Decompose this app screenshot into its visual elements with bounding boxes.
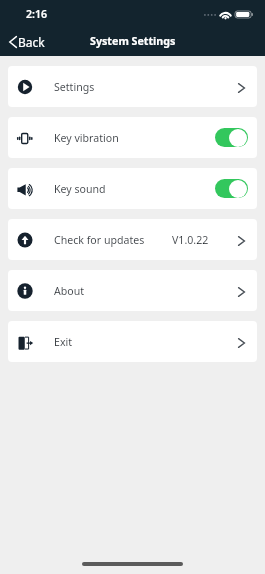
other: Open Check for updates [238,236,245,246]
button[interactable]: Toggle Key sound [215,179,248,198]
button[interactable]: Settings [8,66,257,107]
staticText: About [54,284,85,298]
staticText: Settings [54,80,95,94]
other: Open Settings [238,83,245,93]
button[interactable]: Exit [8,321,257,362]
button[interactable]: Key vibration [8,117,257,158]
staticText: 2:16 [26,7,48,21]
button[interactable]: Toggle Key vibration [215,128,248,147]
staticText: Key vibration [54,131,119,145]
staticText: Key sound [54,182,106,196]
staticText: System Settings [90,34,176,49]
staticText: Exit [54,335,73,349]
other: Open Exit [238,338,245,348]
button[interactable]: Back [0,28,55,56]
button[interactable]: Key sound [8,168,257,209]
other: Open About [238,287,245,297]
button[interactable]: About [8,270,257,311]
staticText: Back [18,34,45,50]
staticText: Check for updates [54,233,145,247]
staticText: V1.0.22 [172,233,209,247]
button[interactable]: Check for updates [8,219,257,260]
